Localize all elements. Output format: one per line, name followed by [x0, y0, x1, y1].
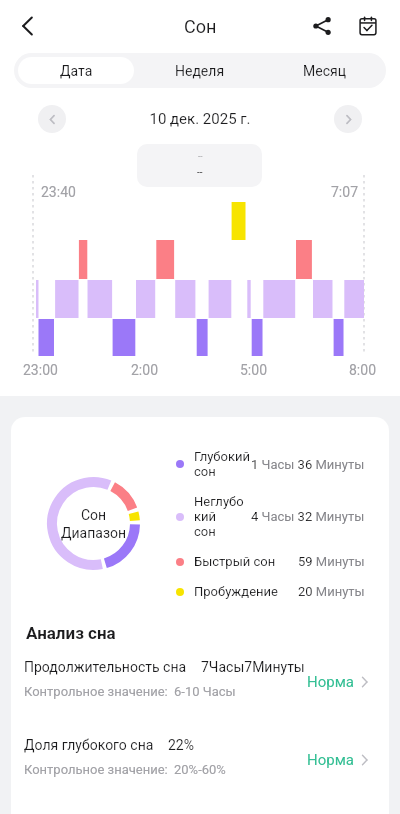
button[interactable]: Share	[302, 6, 342, 46]
button[interactable]: Неделя	[138, 53, 262, 88]
button[interactable]: Доля глубокого сна	[11, 723, 389, 781]
staticText: Неглубо кий сон	[194, 494, 251, 539]
button[interactable]: Back	[8, 6, 48, 46]
staticText: Сон	[81, 507, 107, 523]
staticText: Быстрый сон	[194, 554, 279, 569]
staticText: Дата	[60, 63, 93, 79]
staticText: 10 дек. 2025 г.	[0, 110, 400, 128]
button[interactable]: Месяц	[262, 53, 386, 88]
staticText: Доля глубокого сна	[24, 737, 154, 753]
staticText: Анализ сна	[26, 623, 116, 643]
staticText: Контрольное значение:	[24, 762, 168, 777]
staticText: 4 Часы 32 Минуты	[251, 509, 365, 524]
staticText: Глубокий сон	[194, 449, 251, 479]
button[interactable]: Calendar	[348, 6, 388, 46]
staticText: 7Часы7Минуты	[201, 659, 305, 675]
staticText: Контрольное значение:	[24, 684, 168, 699]
staticText: --	[197, 167, 203, 179]
staticText: Сон	[184, 16, 217, 37]
button[interactable]: Дата	[18, 57, 134, 84]
button[interactable]: Next day	[334, 105, 362, 133]
staticText: Норма	[307, 673, 354, 691]
staticText: Пробуждение	[194, 584, 279, 599]
button[interactable]: Previous day	[38, 105, 66, 133]
staticText: 2:00	[131, 362, 158, 378]
staticText: 20%-60%	[174, 762, 226, 777]
staticText: 20 Минуты	[298, 584, 365, 599]
staticText: 6-10 Часы	[174, 684, 236, 699]
staticText: Неделя	[175, 63, 225, 79]
staticText: 23:40	[41, 184, 76, 200]
staticText: 8:00	[349, 362, 376, 378]
staticText: --	[198, 152, 203, 161]
staticText: 59 Минуты	[298, 554, 365, 569]
staticText: 5:00	[240, 362, 267, 378]
staticText: Диапазон	[61, 525, 127, 541]
staticText: Норма	[307, 751, 354, 769]
staticText: Месяц	[303, 63, 346, 79]
button[interactable]: Продолжительность сна	[11, 645, 389, 703]
staticText: 7:07	[331, 184, 358, 200]
staticText: Продолжительность сна	[24, 659, 187, 675]
staticText: 1 Часы 36 Минуты	[251, 457, 365, 472]
staticText: 23:00	[23, 362, 58, 378]
staticText: 22%	[168, 737, 194, 753]
